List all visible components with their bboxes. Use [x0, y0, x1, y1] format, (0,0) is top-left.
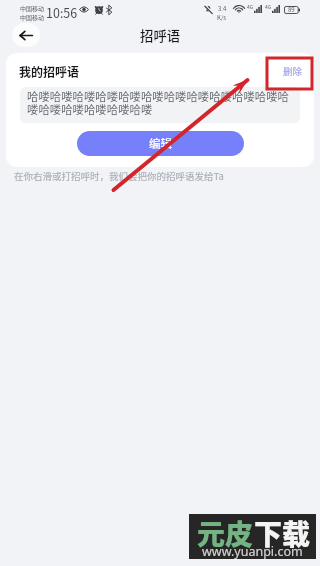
- staticText: www.yuanpi.com: [202, 543, 303, 560]
- staticText: 3.4: [218, 4, 227, 13]
- staticText: 下载: [254, 513, 311, 554]
- staticText: K/s: [217, 13, 227, 22]
- staticText: 4G: [247, 3, 254, 10]
- staticText: 招呼语: [140, 25, 181, 44]
- staticText: 元皮: [197, 513, 254, 554]
- staticText: 删除: [283, 64, 303, 78]
- staticText: 我的招呼语: [19, 63, 80, 80]
- staticText: 中国移动: [20, 13, 45, 22]
- staticText: 10:56: [46, 3, 78, 21]
- staticText: 在你右滑或打招呼时，我们会把你的招呼语发给Ta: [14, 169, 224, 183]
- button[interactable]: 删除: [280, 62, 306, 80]
- staticText: 4G: [265, 3, 272, 10]
- staticText: 89: [288, 5, 295, 14]
- staticText: 编辑: [149, 135, 172, 152]
- button[interactable]: 编辑: [77, 131, 244, 156]
- staticText: 中国移动: [20, 4, 45, 13]
- staticText: 哈喽哈喽哈喽哈喽哈喽哈喽哈喽哈喽哈喽哈喽哈喽哈喽哈喽哈喽哈喽哈喽哈喽: [27, 88, 293, 118]
- button[interactable]: 返回: [12, 23, 40, 47]
